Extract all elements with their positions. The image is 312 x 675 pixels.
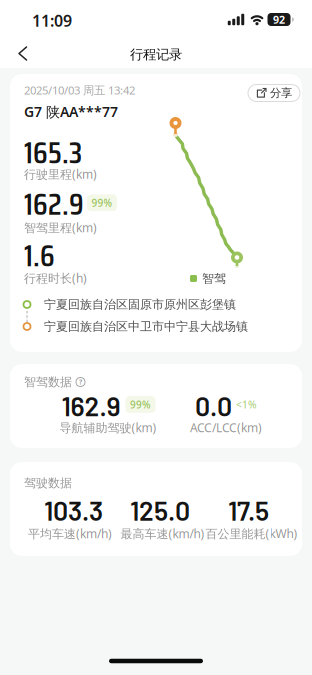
staticText: 162.9 [61, 389, 120, 421]
staticText: 行驶里程(km) [24, 166, 97, 182]
staticText: 分享 [270, 86, 292, 100]
staticText: 1.6 [24, 231, 55, 280]
staticText: 11:09 [32, 10, 72, 31]
staticText: 智驾数据 [24, 374, 72, 389]
staticText: 2025/10/03 周五 13:42 [24, 82, 135, 98]
staticText: 125.0 [130, 494, 190, 526]
staticText: 百公里能耗(kWh) [205, 525, 297, 542]
staticText: 92 [273, 12, 285, 27]
staticText: 最高车速(km/h) [120, 525, 204, 542]
staticText: 智驾 [202, 271, 226, 286]
staticText: 162.9 [24, 180, 84, 228]
staticText: 行程时长(h) [24, 270, 87, 286]
button[interactable]: 分享 [248, 84, 300, 101]
staticText: 0.0 [195, 389, 232, 421]
staticText: <1% [236, 398, 257, 411]
staticText: 99% [130, 398, 151, 411]
button[interactable] [10, 39, 34, 68]
staticText: 智驾里程(km) [24, 219, 97, 236]
staticText: 17.5 [228, 494, 269, 526]
staticText: ? [79, 377, 82, 387]
staticText: G7 陕AA***77 [24, 102, 118, 121]
staticText: 165.3 [24, 128, 82, 177]
staticText: 103.3 [44, 494, 103, 526]
staticText: 99% [91, 196, 112, 209]
staticText: ACC/LCC(km) [190, 419, 262, 436]
staticText: 宁夏回族自治区固原市原州区彭堡镇 [44, 297, 236, 312]
staticText: 宁夏回族自治区中卫市中宁县大战场镇 [44, 319, 248, 334]
button[interactable]: ? [76, 377, 85, 386]
staticText: 驾驶数据 [24, 475, 72, 490]
staticText: 行程记录 [130, 46, 182, 63]
staticText: 导航辅助驾驶(km) [59, 419, 156, 436]
staticText: 平均车速(km/h) [28, 525, 112, 542]
